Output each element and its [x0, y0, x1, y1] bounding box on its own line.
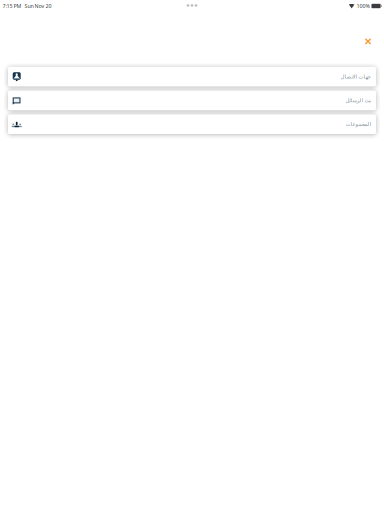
button[interactable]: جهات الاتصال	[8, 67, 376, 86]
button[interactable]: المجموعات	[8, 114, 376, 134]
staticText: بث الرسائل	[345, 97, 370, 103]
staticText: جهات الاتصال	[340, 74, 370, 80]
button[interactable]: Close	[358, 31, 378, 52]
button[interactable]: بث الرسائل	[8, 91, 376, 110]
staticText: 100%	[356, 2, 369, 10]
staticText: 7:15 PM	[2, 2, 21, 10]
staticText: المجموعات	[345, 121, 370, 127]
staticText: Sun Nov 20	[21, 2, 51, 10]
